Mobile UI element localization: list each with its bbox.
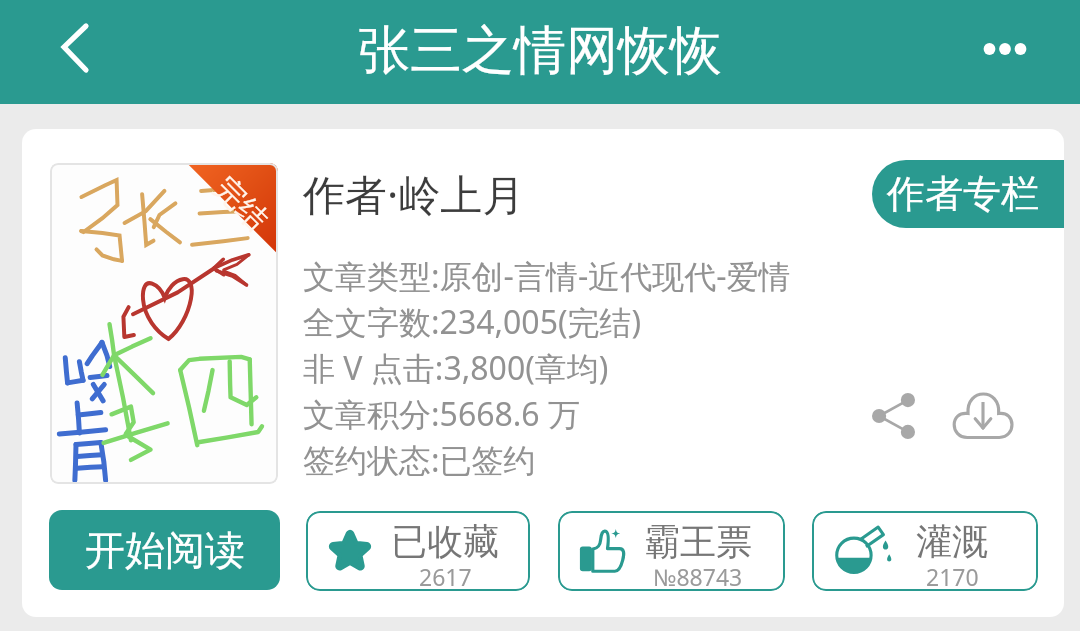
staticText: 已收藏 [391,519,499,564]
button[interactable]: 灌溉 [812,511,1038,591]
button[interactable]: Back [28,10,112,94]
staticText: 完结 [206,169,276,239]
button[interactable]: 作者专栏 [872,160,1064,228]
staticText: 文章积分:5668.6 万 [303,392,580,436]
staticText: №88743 [653,561,743,591]
button[interactable]: Download [948,378,1017,447]
staticText: 2617 [419,561,472,591]
button[interactable]: 已收藏 [306,511,530,591]
button[interactable]: 霸王票 [558,511,785,591]
staticText: 作者专栏 [887,170,1039,218]
staticText: 开始阅读 [85,525,245,575]
button[interactable]: 开始阅读 [49,510,280,590]
staticText: 签约状态:已签约 [303,438,536,482]
staticText: 张三之情网恢恢 [358,18,722,84]
staticText: 2170 [926,561,979,591]
staticText: 非 V 点击:3,800(章均) [303,346,609,390]
staticText: 作者·岭上月 [303,165,525,222]
button[interactable]: More options [960,10,1050,94]
staticText: 文章类型:原创-言情-近代现代-爱情 [303,254,791,298]
staticText: 全文字数:234,005(完结) [303,300,642,344]
staticText: 灌溉 [916,519,988,564]
staticText: 霸王票 [644,519,752,564]
button[interactable]: Share [859,381,928,450]
